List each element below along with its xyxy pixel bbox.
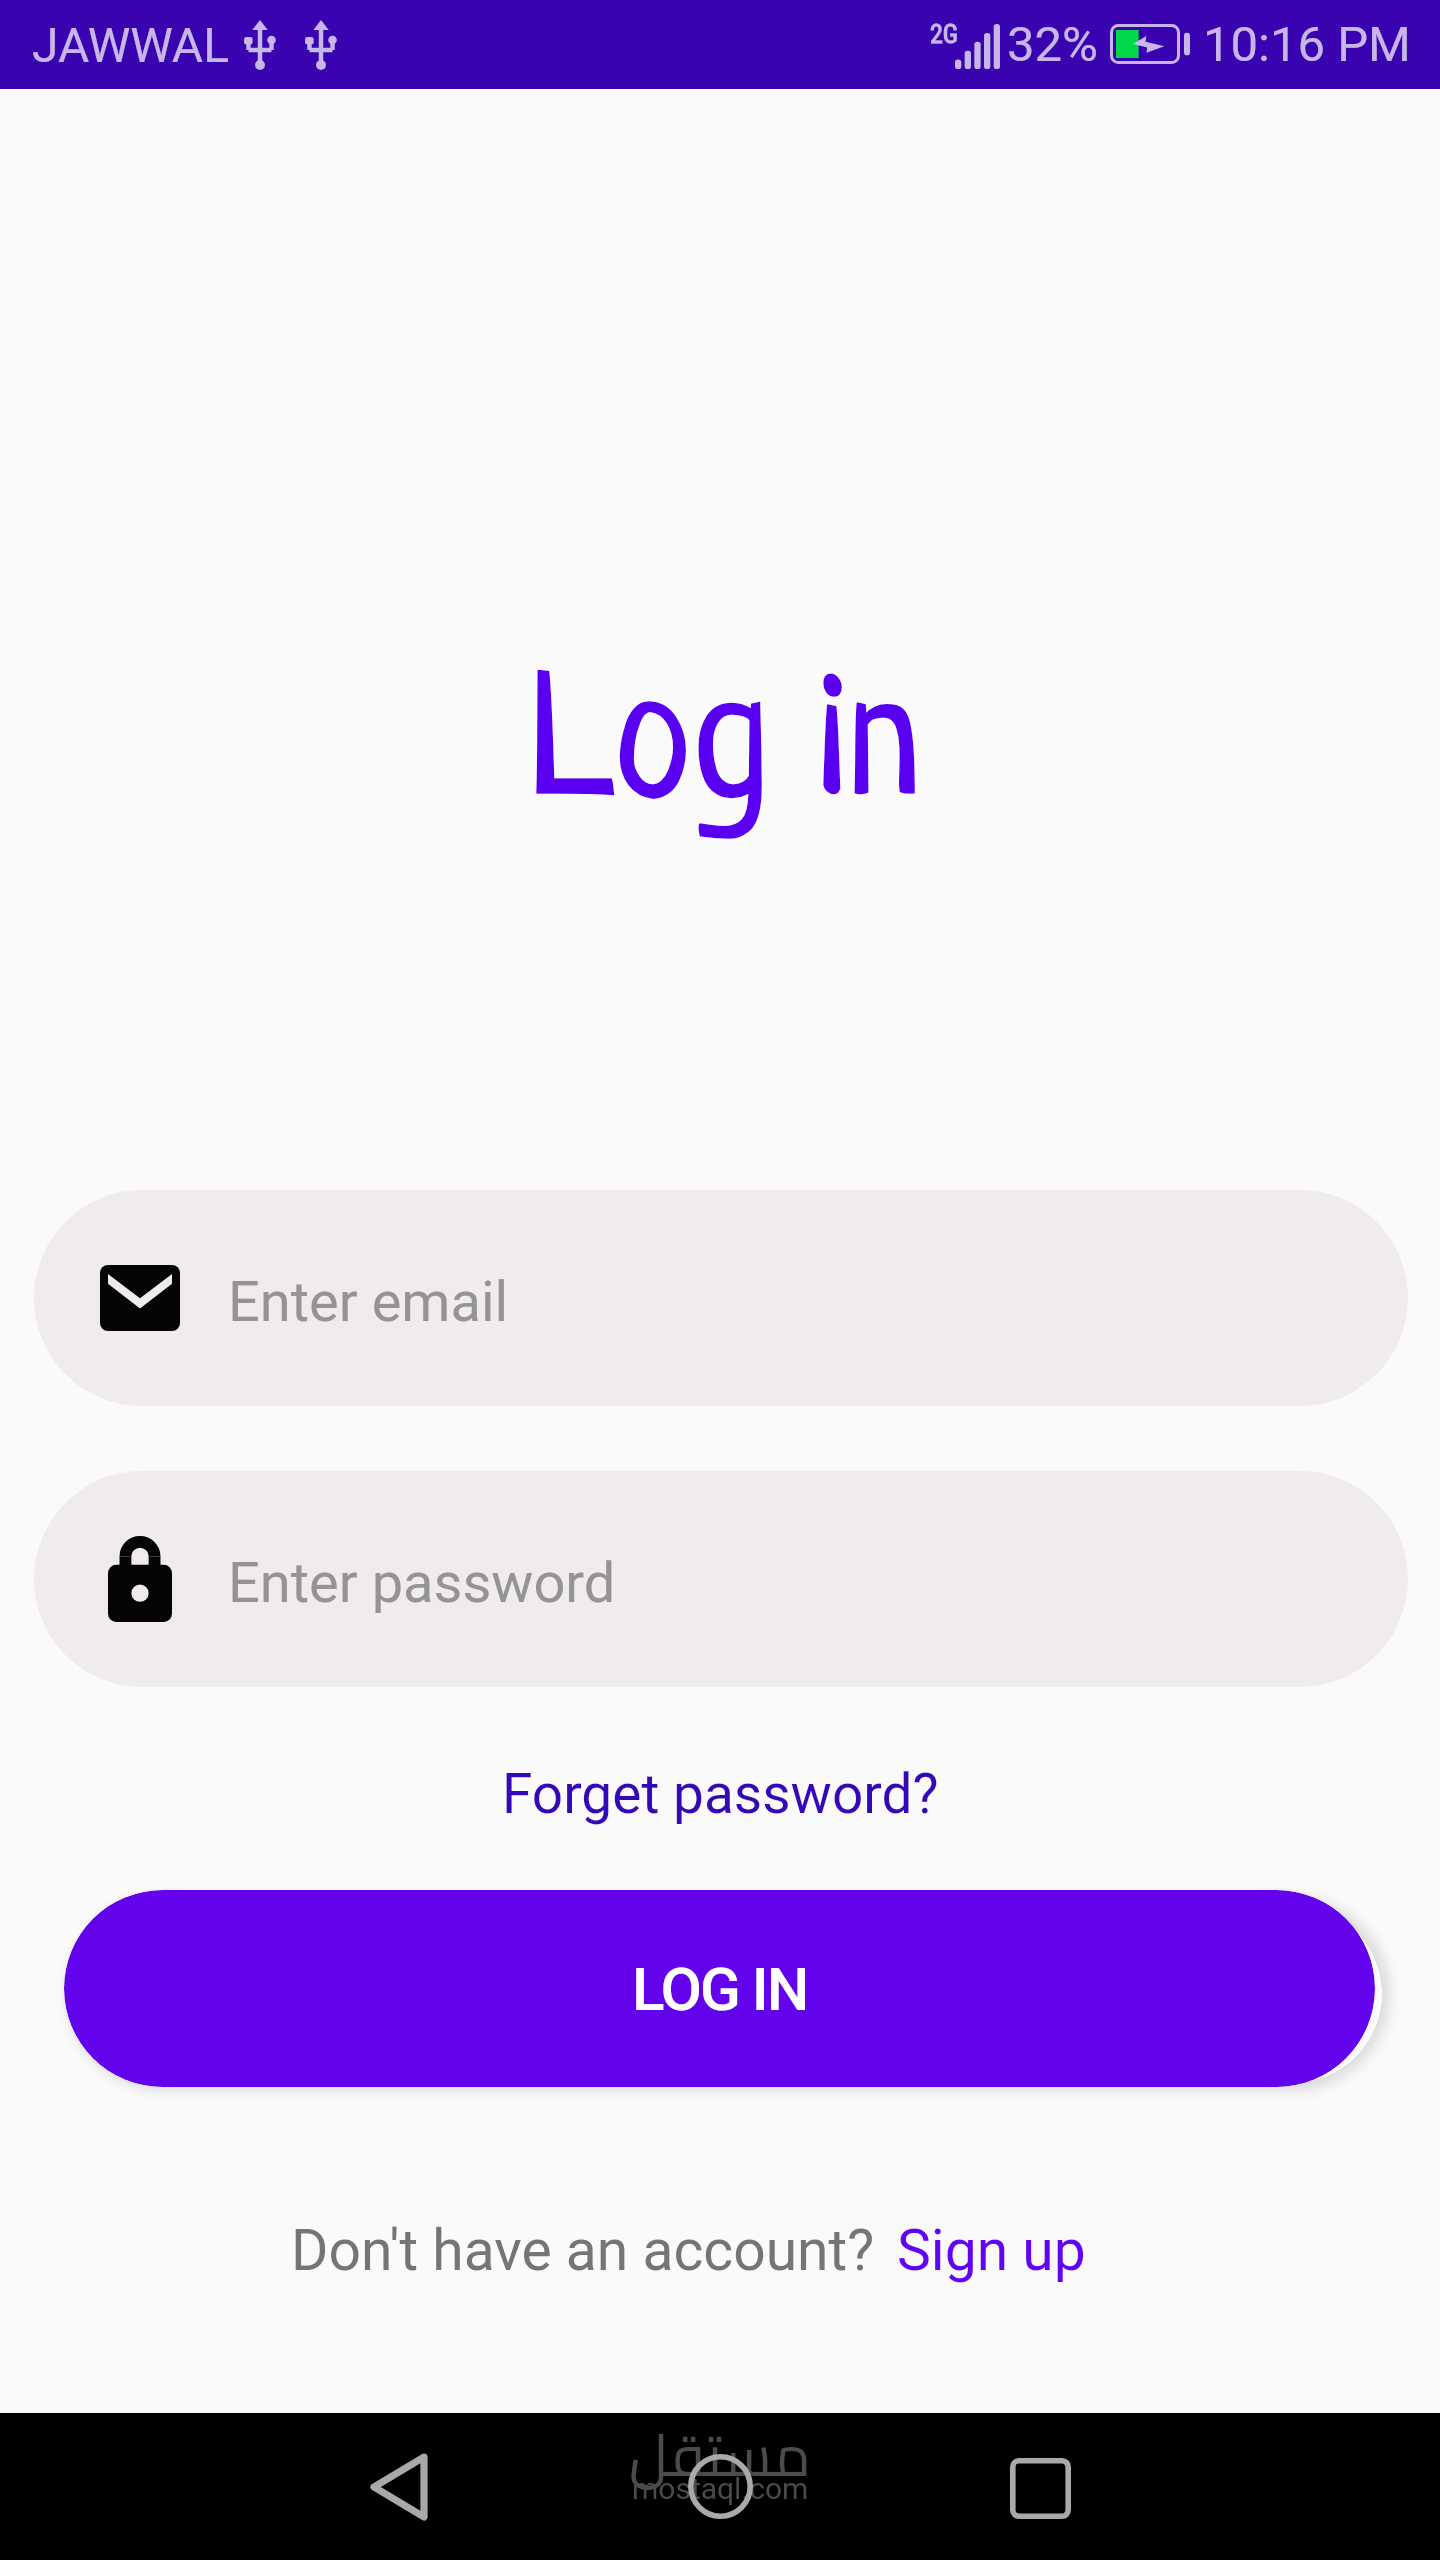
staticText: Forget password? (502, 1762, 939, 1826)
button[interactable]: Enter email (34, 1190, 1408, 1406)
button[interactable]: Recents (965, 2413, 1115, 2560)
staticText: 10:16 PM (1203, 16, 1411, 73)
button[interactable]: Forget password? (486, 1754, 955, 1834)
button[interactable]: Enter password (34, 1471, 1408, 1687)
staticText: Log in (530, 658, 921, 843)
staticText: JAWWAL (32, 17, 229, 73)
staticText: Enter password (228, 1550, 616, 1616)
button[interactable]: Home (645, 2413, 795, 2560)
staticText: مستقل (629, 2400, 811, 2509)
staticText: Log in (530, 658, 921, 843)
staticText: LOG IN (632, 1954, 808, 2024)
staticText: 32% (1007, 16, 1098, 73)
staticText: Enter email (228, 1269, 509, 1335)
button[interactable]: Back (324, 2413, 474, 2560)
staticText: Sign up (897, 2217, 1086, 2284)
staticText: mostaql.com (632, 2471, 809, 2506)
button[interactable]: Sign up (897, 2217, 1086, 2284)
staticText: 2G (930, 19, 959, 49)
staticText: Don't have an account? (291, 2217, 875, 2284)
button[interactable]: LOG IN (64, 1890, 1375, 2087)
